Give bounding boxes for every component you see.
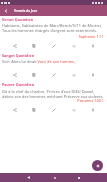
button[interactable]: Edit	[48, 43, 59, 49]
staticText: Sanget Quotidien	[2, 53, 35, 58]
button[interactable]: Delete	[87, 72, 98, 78]
staticText: Dit à la chef du charbre, Princes d'eux …	[2, 89, 105, 99]
staticText: Habitants, Sabbatistes de Marc/Bench/5/1…	[2, 23, 105, 33]
staticText: Psaumes 140:1	[3, 98, 104, 103]
button[interactable]: Edit	[48, 107, 59, 113]
button[interactable]: Refresh	[68, 107, 79, 113]
button[interactable]: Add	[92, 160, 103, 171]
button[interactable]: Delete	[87, 107, 98, 113]
button[interactable]: Recents	[74, 173, 83, 182]
staticText: Pauvre Quotidien	[2, 82, 35, 87]
button[interactable]: Refresh	[68, 43, 79, 49]
staticText: Voir: Alors lui dirait Voici de son homm…	[2, 59, 105, 64]
button[interactable]: Back	[0, 5, 11, 16]
button[interactable]: Copy	[28, 107, 39, 113]
button[interactable]: Back	[24, 173, 33, 182]
button[interactable]: Copy	[28, 43, 39, 49]
button[interactable]: Edit	[48, 72, 59, 78]
button[interactable]: Home	[50, 173, 59, 182]
button[interactable]: Copy	[28, 72, 39, 78]
button[interactable]: Delete	[87, 43, 98, 49]
staticText: Sophonie 1:11	[3, 34, 104, 39]
staticText: Versets du Jour	[14, 9, 38, 13]
button[interactable]: Share	[9, 107, 20, 113]
staticText: Verset Quotidien	[2, 17, 34, 22]
button[interactable]: Share	[9, 72, 20, 78]
button[interactable]: Refresh	[68, 72, 79, 78]
button[interactable]: Share	[9, 43, 20, 49]
